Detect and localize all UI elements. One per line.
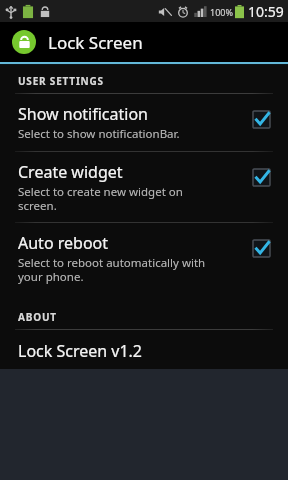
staticText: Lock Screen [48, 31, 143, 54]
staticText: Lock Screen v1.2 [18, 340, 143, 361]
staticText: Select to show notificationBar. [18, 126, 180, 142]
button[interactable]: Toggle setting [248, 164, 274, 190]
button[interactable]: Lock Screen v1.2 [0, 330, 288, 369]
button[interactable]: Toggle setting [248, 235, 274, 261]
staticText: 100% [210, 6, 233, 18]
staticText: Select to reboot automatically with your… [18, 255, 206, 284]
staticText: Show notification [18, 103, 149, 125]
staticText: Select to create new widget on screen. [18, 184, 183, 213]
staticText: ABOUT [18, 310, 57, 324]
staticText: USER SETTINGS [18, 74, 104, 88]
staticText: 10:59 [248, 2, 284, 21]
staticText: Auto reboot [18, 232, 109, 254]
button[interactable]: Create widget [0, 152, 288, 222]
button[interactable]: Show notification [0, 94, 288, 151]
button[interactable]: Auto reboot [0, 223, 288, 293]
button[interactable]: Toggle setting [248, 106, 274, 132]
staticText: Create widget [18, 161, 123, 183]
